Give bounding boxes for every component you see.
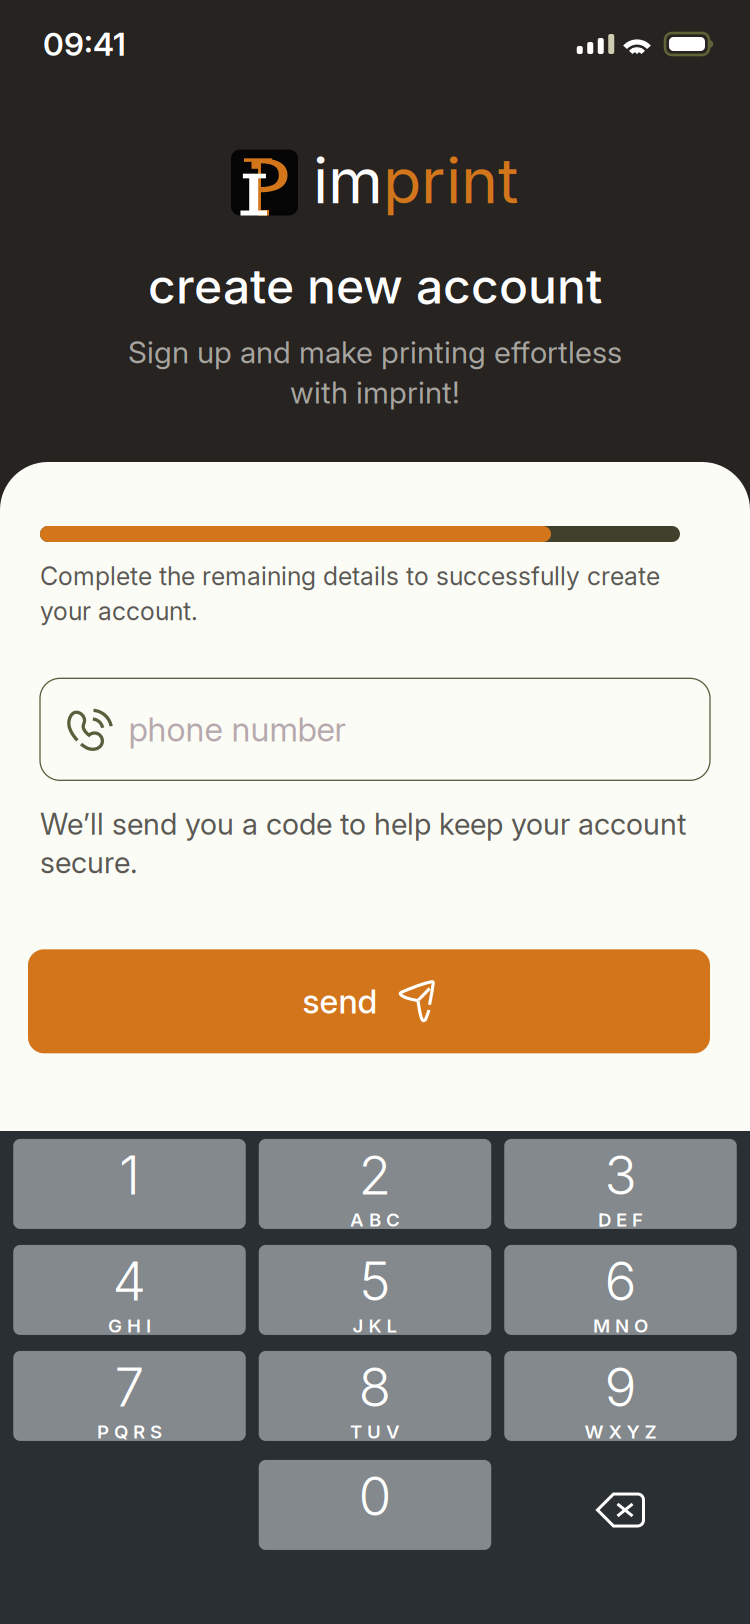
- staticText: 5: [359, 1249, 391, 1313]
- staticText: 1: [119, 1143, 140, 1207]
- button[interactable]: 2: [259, 1144, 491, 1234]
- staticText: We’ll send you a code to help keep your …: [40, 806, 686, 842]
- button[interactable]: 6: [504, 1250, 737, 1340]
- staticText: D E F: [598, 1208, 643, 1231]
- staticText: Sign up and make printing effortless: [128, 334, 622, 370]
- staticText: 09:41: [43, 25, 126, 63]
- button[interactable]: 9: [504, 1356, 737, 1446]
- staticText: 3: [604, 1143, 636, 1207]
- button[interactable]: 5: [259, 1250, 491, 1340]
- staticText: 8: [358, 1355, 391, 1419]
- staticText: 9: [604, 1355, 636, 1419]
- staticText: A B C: [350, 1208, 400, 1231]
- staticText: 7: [114, 1355, 144, 1419]
- staticText: 6: [604, 1249, 636, 1313]
- staticText: phone number: [128, 709, 345, 749]
- staticText: 2: [358, 1143, 391, 1207]
- button[interactable]: 0: [259, 1465, 491, 1555]
- staticText: secure.: [40, 845, 138, 880]
- staticText: T U V: [350, 1420, 400, 1443]
- staticText: your account.: [40, 596, 198, 626]
- button[interactable]: 4: [13, 1250, 246, 1340]
- staticText: create new account: [148, 257, 602, 315]
- staticText: with imprint!: [290, 374, 460, 411]
- staticText: im: [313, 143, 383, 218]
- staticText: Complete the remaining details to succes…: [40, 561, 660, 591]
- staticText: print: [383, 143, 519, 218]
- staticText: J K L: [352, 1314, 397, 1337]
- button[interactable]: Delete: [504, 1465, 737, 1555]
- staticText: P Q R S: [97, 1420, 162, 1443]
- staticText: send: [302, 981, 377, 1021]
- button[interactable]: 3: [504, 1144, 737, 1234]
- button[interactable]: send: [28, 949, 710, 1053]
- button[interactable]: 7: [13, 1356, 246, 1446]
- button[interactable]: 1: [13, 1144, 246, 1234]
- staticText: 0: [358, 1464, 391, 1528]
- button[interactable]: 8: [259, 1356, 491, 1446]
- staticText: M N O: [593, 1314, 648, 1337]
- staticText: G H I: [108, 1314, 151, 1337]
- staticText: 4: [112, 1249, 146, 1313]
- staticText: W X Y Z: [584, 1420, 656, 1443]
